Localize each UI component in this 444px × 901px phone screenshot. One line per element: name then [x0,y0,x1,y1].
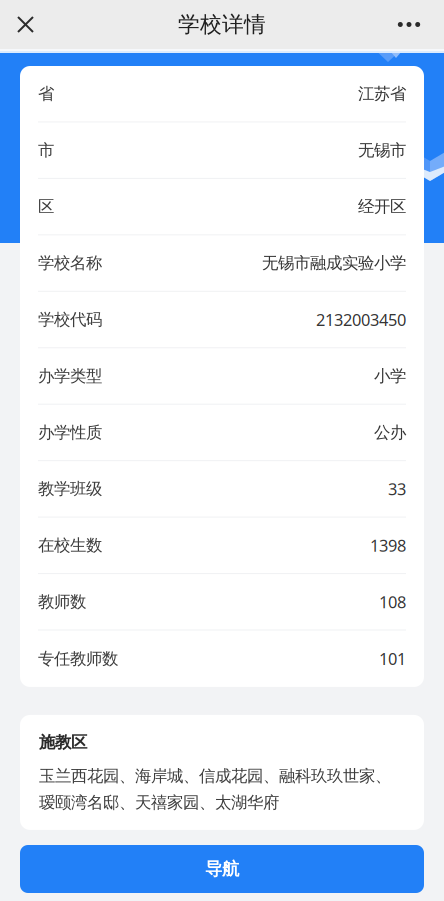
staticText: 小学 [374,366,406,386]
staticText: 专任教师数 [38,648,118,669]
staticText: 2132003450 [316,308,406,331]
staticText: 导航 [205,858,239,880]
staticText: 学校详情 [178,11,266,38]
staticText: 办学性质 [38,422,102,443]
staticText: 市 [38,140,54,160]
staticText: 101 [379,648,406,670]
button[interactable]: 更多 [374,0,444,49]
staticText: 区 [38,196,54,217]
staticText: 无锡市 [358,140,406,160]
staticText: 学校代码 [38,309,102,330]
staticText: 玉兰西花园、海岸城、信成花园、融科玖玖世家、瑷颐湾名邸、天禧家园、太湖华府 [39,766,391,813]
staticText: 108 [379,591,406,613]
staticText: 无锡市融成实验小学 [262,253,406,273]
staticText: 省 [38,83,54,104]
button[interactable]: 关闭 [0,0,51,49]
staticText: 经开区 [358,196,406,217]
staticText: 学校名称 [38,253,102,273]
staticText: 在校生数 [38,535,102,556]
staticText: 办学类型 [38,366,102,386]
staticText: 教师数 [38,591,86,612]
staticText: 33 [388,478,406,500]
button[interactable]: 导航 [20,845,424,893]
staticText: 施教区 [39,732,87,753]
staticText: 江苏省 [358,83,406,104]
staticText: 1398 [370,534,406,556]
staticText: 教学班级 [38,478,102,499]
staticText: 公办 [374,422,406,443]
